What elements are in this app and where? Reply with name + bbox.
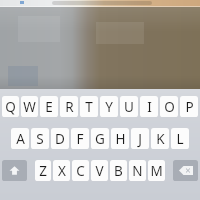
staticText: H xyxy=(115,130,126,148)
staticText: Z xyxy=(39,162,47,180)
staticText: I xyxy=(147,98,152,116)
button[interactable]: C xyxy=(72,160,89,181)
staticText: U xyxy=(124,98,134,116)
button[interactable]: L xyxy=(171,128,189,149)
button[interactable]: Z xyxy=(35,160,51,181)
button[interactable]: A xyxy=(11,128,29,149)
staticText: L xyxy=(176,130,184,148)
button[interactable]: P xyxy=(180,96,198,117)
button[interactable]: T xyxy=(80,96,98,117)
button[interactable]: N xyxy=(129,160,146,181)
staticText: O xyxy=(164,98,175,116)
button[interactable]: Shift xyxy=(2,160,27,181)
button[interactable]: R xyxy=(60,96,78,117)
button[interactable]: J xyxy=(131,128,149,149)
button[interactable]: E xyxy=(40,96,58,117)
staticText: P xyxy=(185,98,194,116)
button[interactable]: Q xyxy=(2,96,19,117)
button[interactable]: O xyxy=(160,96,178,117)
button[interactable]: Y xyxy=(100,96,118,117)
staticText: Q xyxy=(5,98,16,116)
button[interactable]: S xyxy=(31,128,49,149)
staticText: N xyxy=(132,162,143,180)
button[interactable]: H xyxy=(111,128,129,149)
staticText: F xyxy=(76,130,84,148)
staticText: S xyxy=(36,130,44,148)
button[interactable]: D xyxy=(51,128,69,149)
staticText: X xyxy=(58,162,66,180)
button[interactable]: K xyxy=(151,128,169,149)
button[interactable]: W xyxy=(21,96,38,117)
staticText: C xyxy=(76,162,85,180)
staticText: A xyxy=(16,130,25,148)
button[interactable]: F xyxy=(71,128,89,149)
button[interactable]: U xyxy=(120,96,138,117)
button[interactable]: X xyxy=(53,160,70,181)
staticText: E xyxy=(45,98,53,116)
staticText: W xyxy=(23,98,36,116)
staticText: B xyxy=(114,162,123,180)
button[interactable]: M xyxy=(148,160,165,181)
staticText: R xyxy=(65,98,74,116)
button[interactable]: G xyxy=(91,128,109,149)
staticText: D xyxy=(55,130,65,148)
button[interactable]: Backspace xyxy=(173,160,198,181)
button[interactable]: B xyxy=(110,160,127,181)
staticText: V xyxy=(95,162,104,180)
button[interactable]: I xyxy=(140,96,158,117)
staticText: M xyxy=(150,162,163,180)
staticText: Y xyxy=(105,98,113,116)
staticText: J xyxy=(138,130,142,148)
staticText: T xyxy=(85,98,93,116)
staticText: K xyxy=(156,130,165,148)
staticText: G xyxy=(95,130,105,148)
button[interactable]: V xyxy=(91,160,108,181)
